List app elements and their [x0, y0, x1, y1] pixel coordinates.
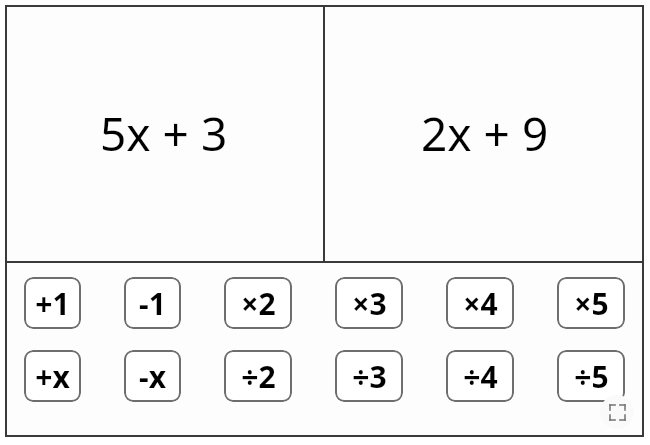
- staticText: ÷5: [574, 356, 609, 397]
- staticText: ×5: [574, 283, 609, 324]
- button[interactable]: ×3: [335, 277, 403, 329]
- staticText: ×4: [463, 283, 498, 324]
- button[interactable]: +1: [24, 277, 81, 329]
- button[interactable]: Enter fullscreen: [600, 395, 634, 429]
- staticText: -x: [139, 356, 166, 397]
- button[interactable]: ÷2: [224, 350, 292, 402]
- button[interactable]: -x: [124, 350, 181, 402]
- button[interactable]: -1: [124, 277, 181, 329]
- button[interactable]: ÷5: [557, 350, 625, 402]
- button[interactable]: +x: [24, 350, 81, 402]
- button[interactable]: ÷4: [446, 350, 514, 402]
- button[interactable]: 5x + 3: [5, 5, 323, 261]
- staticText: ÷4: [463, 356, 498, 397]
- staticText: 5x + 3: [100, 102, 228, 165]
- button[interactable]: ÷3: [335, 350, 403, 402]
- staticText: ×2: [241, 283, 276, 324]
- button[interactable]: 2x + 9: [325, 5, 644, 261]
- staticText: 2x + 9: [421, 102, 549, 165]
- staticText: +1: [35, 283, 70, 324]
- button[interactable]: ×2: [224, 277, 292, 329]
- staticText: ×3: [352, 283, 387, 324]
- button[interactable]: ×5: [557, 277, 625, 329]
- staticText: ÷3: [352, 356, 387, 397]
- staticText: ÷2: [241, 356, 276, 397]
- button[interactable]: ×4: [446, 277, 514, 329]
- staticText: -1: [139, 283, 166, 324]
- staticText: +x: [35, 356, 70, 397]
